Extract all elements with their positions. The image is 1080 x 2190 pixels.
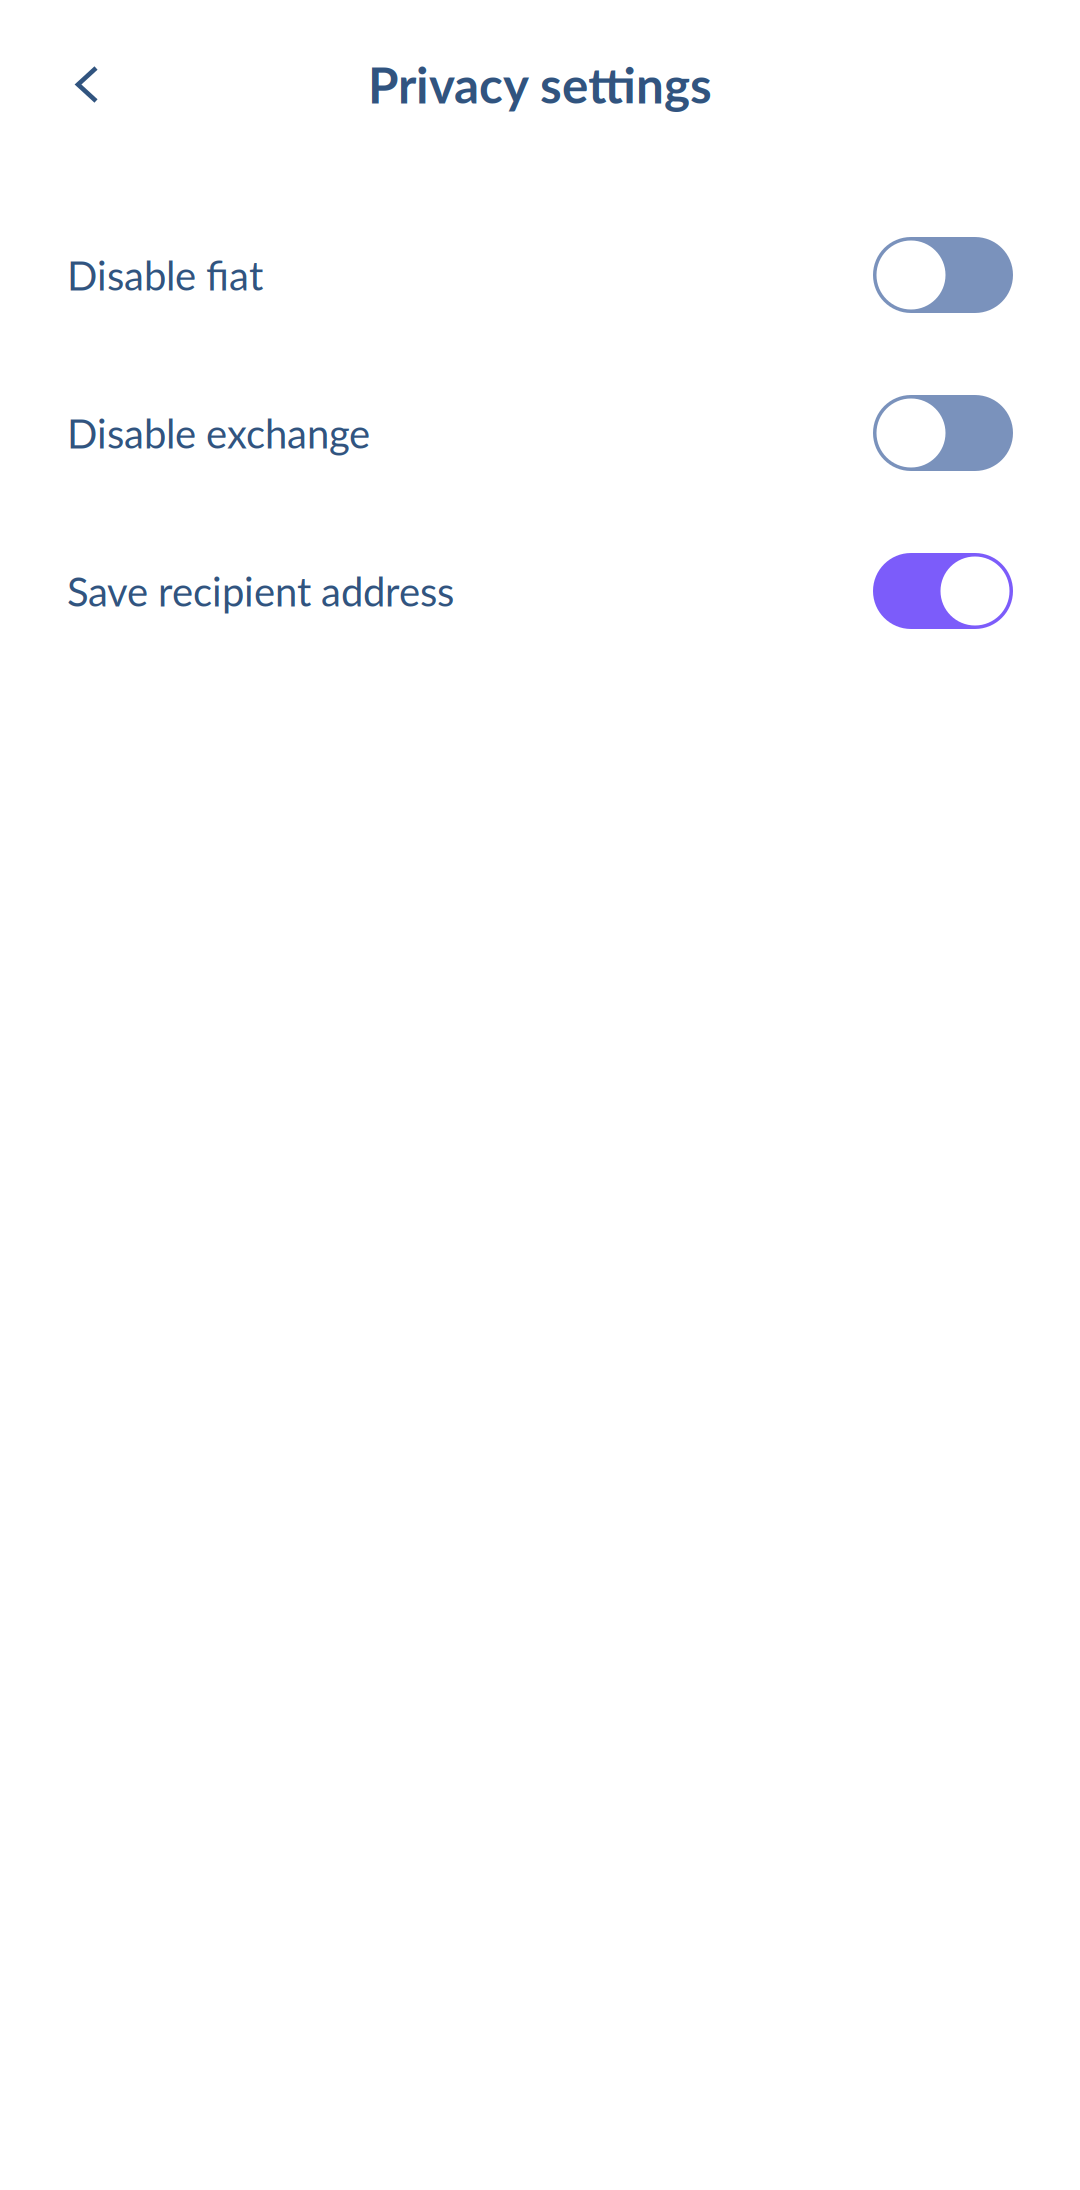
staticText: Disable exchange	[67, 409, 370, 457]
button[interactable]: Disable exchange	[0, 354, 1080, 512]
staticText: Privacy settings	[368, 55, 712, 114]
button[interactable]: Disable fiat	[0, 196, 1080, 354]
staticText: Disable fiat	[67, 251, 263, 299]
button[interactable]: Back	[43, 40, 131, 128]
staticText: Save recipient address	[67, 567, 454, 615]
button[interactable]: Save recipient address	[0, 512, 1080, 670]
